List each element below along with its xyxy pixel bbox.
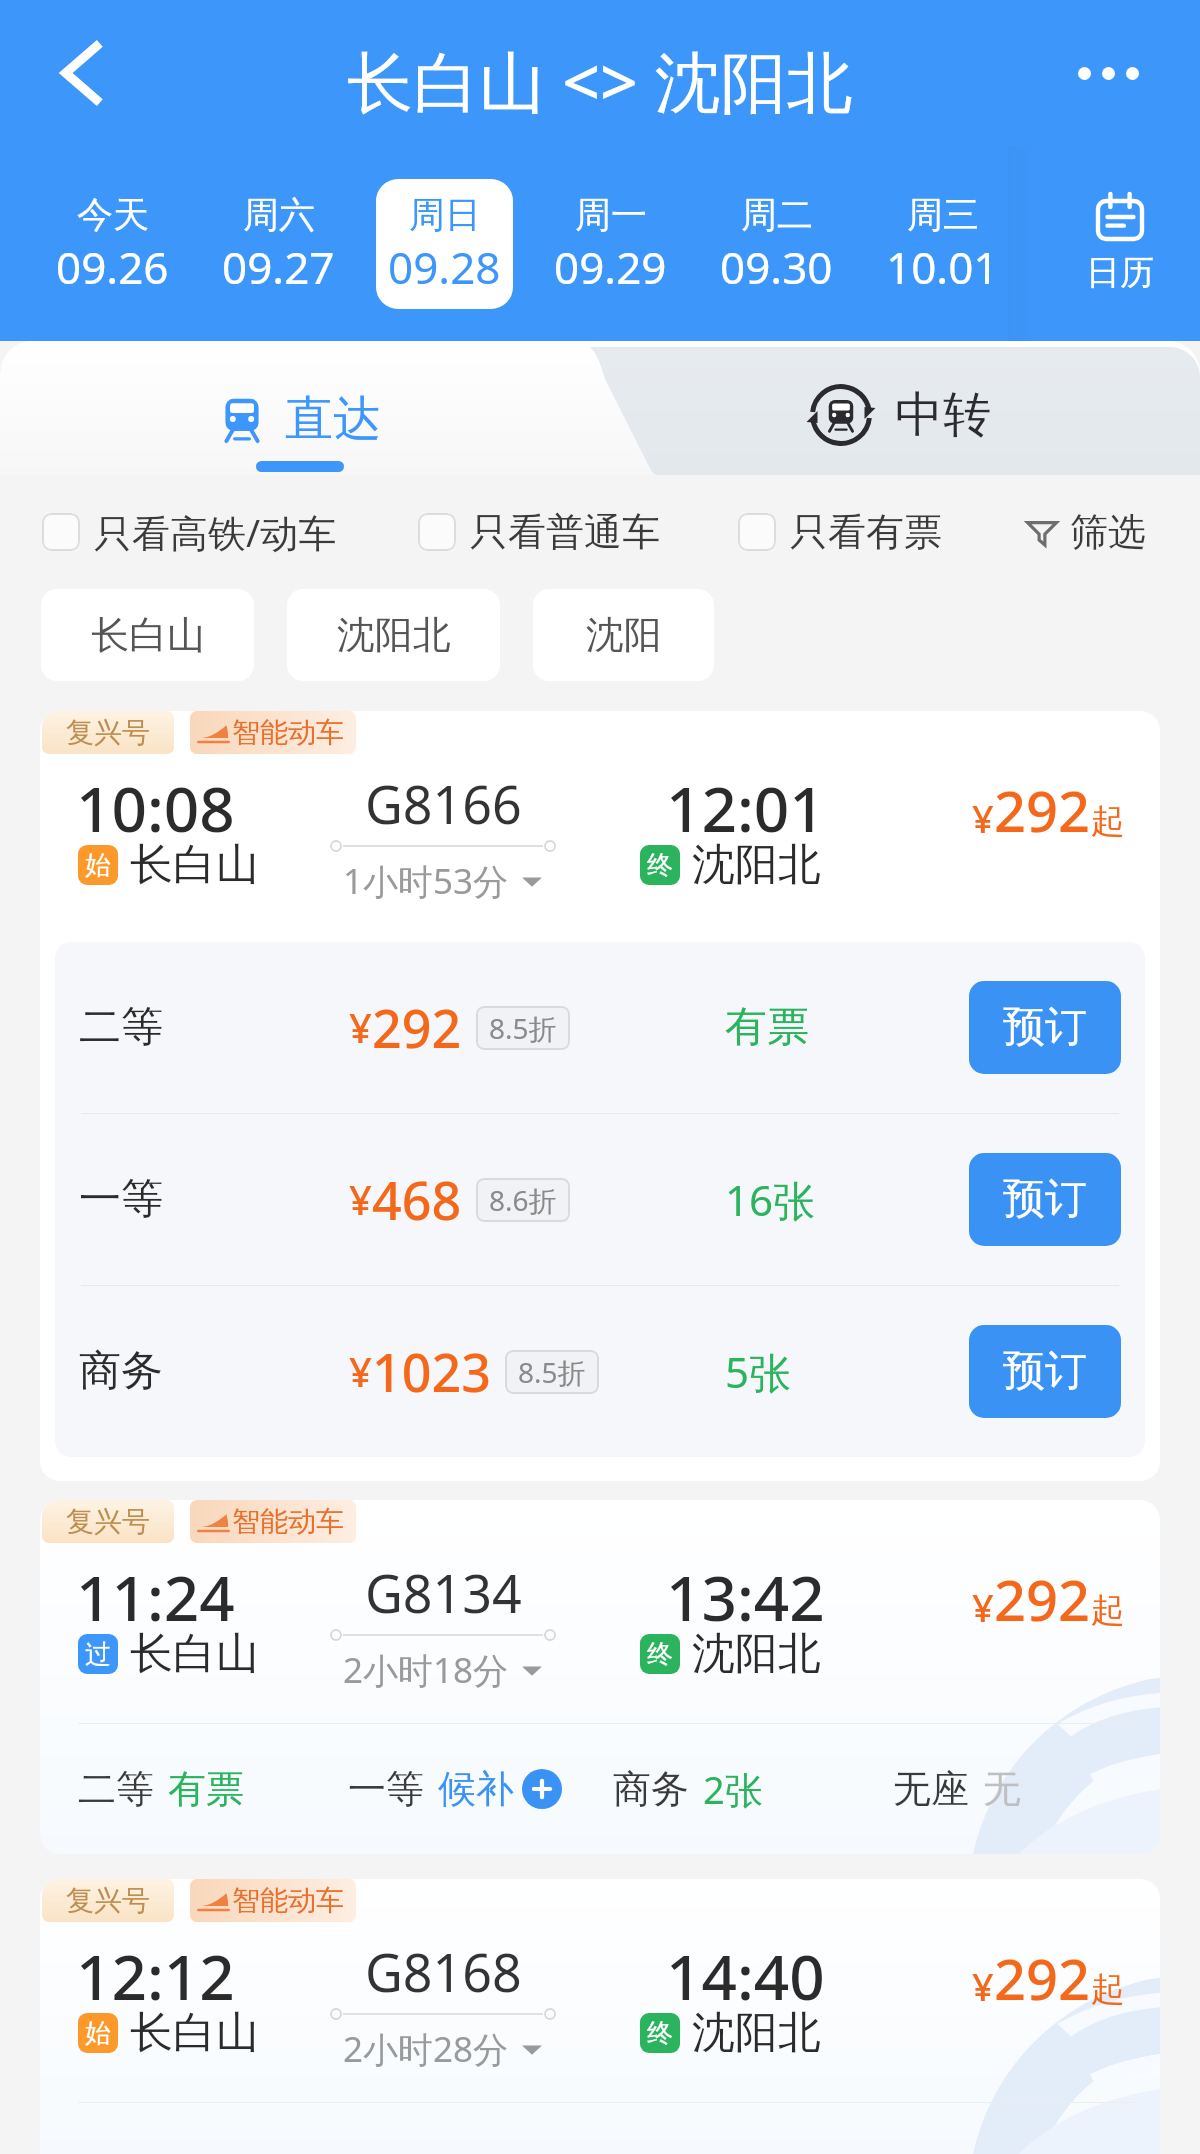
button[interactable]: 只看普通车 bbox=[418, 508, 660, 556]
button[interactable]: 只看高铁/动车 bbox=[42, 506, 337, 558]
staticText: 起 bbox=[1091, 1968, 1125, 2011]
staticText: 无座 bbox=[893, 1765, 969, 1813]
staticText: 沈阳北 bbox=[692, 1627, 821, 1681]
staticText: 复兴号 bbox=[66, 1504, 150, 1539]
staticText: ¥ bbox=[349, 1344, 372, 1398]
staticText: 2张 bbox=[703, 1763, 763, 1815]
button[interactable]: 今天 bbox=[44, 179, 181, 309]
button[interactable]: 周一 bbox=[542, 179, 679, 309]
staticText: 预订 bbox=[1003, 1173, 1087, 1226]
staticText: 日历 bbox=[1086, 251, 1154, 294]
staticText: 292 bbox=[994, 772, 1091, 848]
staticText: 12:01 bbox=[666, 766, 825, 850]
staticText: 11:24 bbox=[76, 1555, 235, 1639]
staticText: 有票 bbox=[725, 1001, 809, 1054]
staticText: 二等 bbox=[79, 1001, 163, 1054]
button[interactable]: More options bbox=[1068, 33, 1148, 113]
button[interactable]: 周二 bbox=[708, 179, 845, 309]
staticText: 复兴号 bbox=[66, 715, 150, 750]
staticText: 无 bbox=[983, 1765, 1021, 1813]
button[interactable]: 沈阳北 bbox=[287, 589, 500, 681]
staticText: 1023 bbox=[372, 1336, 491, 1407]
staticText: 8.5折 bbox=[489, 1009, 557, 1047]
staticText: ¥ bbox=[349, 1000, 372, 1054]
staticText: 292 bbox=[994, 1940, 1091, 2016]
button[interactable]: 长白山 bbox=[41, 589, 254, 681]
staticText: 今天 bbox=[77, 192, 149, 237]
staticText: G8166 bbox=[365, 768, 522, 839]
staticText: 2小时28分 bbox=[343, 2025, 509, 2073]
staticText: 中转 bbox=[895, 385, 991, 445]
staticText: 沈阳北 bbox=[692, 838, 821, 892]
staticText: 只看有票 bbox=[790, 508, 942, 556]
staticText: 终 bbox=[647, 1638, 673, 1671]
button[interactable]: 周六 bbox=[210, 179, 347, 309]
staticText: 468 bbox=[372, 1164, 462, 1235]
staticText: 09.30 bbox=[720, 237, 833, 297]
staticText: 智能动车 bbox=[232, 1504, 344, 1539]
staticText: 候补 bbox=[438, 1765, 514, 1813]
staticText: 14:40 bbox=[666, 1934, 825, 2018]
staticText: 12:12 bbox=[76, 1934, 235, 2018]
staticText: 一等 bbox=[79, 1173, 163, 1226]
staticText: 8.5折 bbox=[518, 1353, 586, 1391]
staticText: ¥ bbox=[972, 1960, 994, 2012]
button[interactable]: 直达 bbox=[0, 341, 600, 475]
button[interactable]: 沈阳 bbox=[533, 589, 714, 681]
staticText: 10.01 bbox=[886, 237, 999, 297]
button[interactable]: 只看有票 bbox=[738, 508, 942, 556]
staticText: G8134 bbox=[365, 1557, 522, 1628]
staticText: 8.6折 bbox=[489, 1181, 557, 1219]
staticText: 周三 bbox=[907, 192, 979, 237]
staticText: 只看高铁/动车 bbox=[94, 506, 337, 558]
staticText: 智能动车 bbox=[232, 715, 344, 750]
staticText: 直达 bbox=[285, 389, 381, 449]
staticText: ¥ bbox=[349, 1172, 372, 1226]
staticText: 商务 bbox=[79, 1345, 163, 1398]
button[interactable]: 周日 bbox=[376, 179, 513, 309]
staticText: 智能动车 bbox=[232, 1883, 344, 1918]
staticText: 始 bbox=[85, 849, 111, 882]
button[interactable]: 预订 bbox=[969, 1153, 1121, 1246]
staticText: 周日 bbox=[409, 192, 481, 237]
staticText: 沈阳 bbox=[586, 611, 662, 659]
staticText: 起 bbox=[1091, 1589, 1125, 1632]
staticText: 16张 bbox=[725, 1171, 816, 1228]
staticText: 二等 bbox=[78, 1765, 154, 1813]
staticText: 始 bbox=[85, 2017, 111, 2050]
staticText: 292 bbox=[372, 992, 462, 1063]
staticText: 10:08 bbox=[76, 766, 235, 850]
staticText: 09.26 bbox=[56, 237, 169, 297]
staticText: 起 bbox=[1091, 800, 1125, 843]
staticText: ¥ bbox=[972, 792, 994, 844]
staticText: 长白山 <> 沈阳北 bbox=[347, 35, 853, 125]
button[interactable]: Back bbox=[46, 38, 116, 108]
staticText: 沈阳北 bbox=[337, 611, 451, 659]
button[interactable]: 中转 bbox=[600, 341, 1200, 475]
button[interactable]: 周三 bbox=[874, 179, 1011, 309]
staticText: 预订 bbox=[1003, 1345, 1087, 1398]
staticText: 终 bbox=[647, 849, 673, 882]
button[interactable]: Calendar bbox=[1040, 146, 1200, 341]
staticText: 09.28 bbox=[388, 237, 501, 297]
staticText: G8168 bbox=[365, 1936, 522, 2007]
button[interactable]: 筛选 bbox=[1024, 508, 1146, 556]
staticText: 1小时53分 bbox=[343, 857, 509, 905]
staticText: 一等 bbox=[348, 1765, 424, 1813]
staticText: 周六 bbox=[243, 192, 315, 237]
staticText: 13:42 bbox=[666, 1555, 825, 1639]
staticText: 长白山 bbox=[130, 838, 259, 892]
staticText: 5张 bbox=[725, 1343, 792, 1400]
staticText: 复兴号 bbox=[66, 1883, 150, 1918]
staticText: 只看普通车 bbox=[470, 508, 660, 556]
staticText: 周二 bbox=[741, 192, 813, 237]
staticText: 长白山 bbox=[130, 1627, 259, 1681]
staticText: 终 bbox=[647, 2017, 673, 2050]
staticText: 292 bbox=[994, 1561, 1091, 1637]
staticText: 09.29 bbox=[554, 237, 667, 297]
staticText: 沈阳北 bbox=[692, 2006, 821, 2060]
button[interactable]: 预订 bbox=[969, 1325, 1121, 1418]
staticText: 商务 bbox=[613, 1765, 689, 1813]
staticText: 有票 bbox=[168, 1765, 244, 1813]
button[interactable]: 预订 bbox=[969, 981, 1121, 1074]
